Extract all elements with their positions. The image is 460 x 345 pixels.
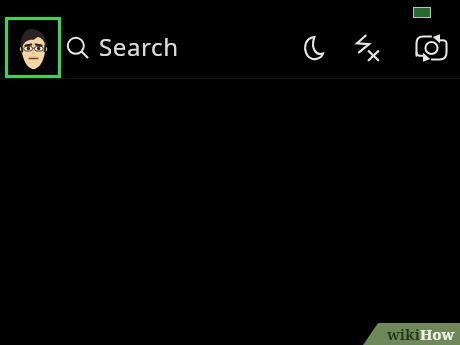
button[interactable]: Flip camera [409, 30, 453, 66]
button[interactable]: Night mode [294, 30, 332, 65]
staticText: wiki [387, 324, 420, 344]
button[interactable]: Profile [5, 18, 61, 78]
staticText: Search [99, 30, 179, 63]
staticText: How [420, 324, 455, 344]
button[interactable]: Search [62, 22, 212, 74]
button[interactable]: Flash off [347, 29, 387, 66]
